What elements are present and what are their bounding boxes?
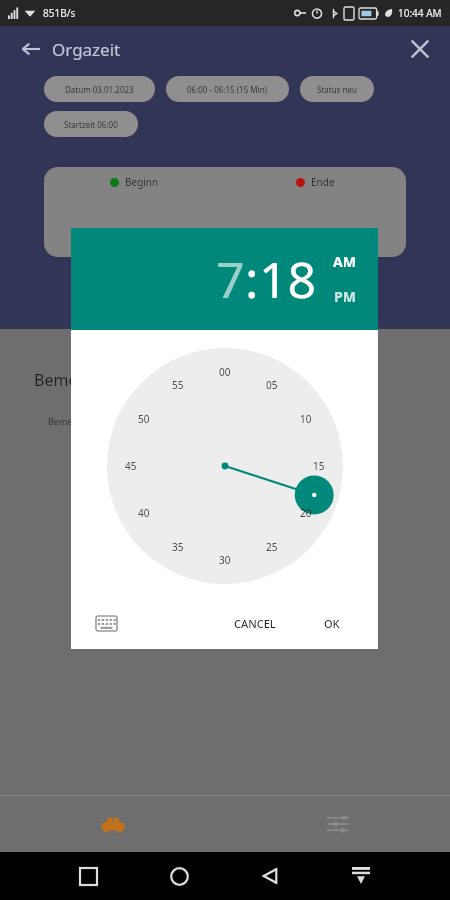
staticText: 10:44 AM [398, 6, 442, 20]
staticText: OK [324, 616, 340, 631]
staticText: 20 [300, 506, 312, 520]
staticText: Orgazeit [52, 38, 121, 61]
button[interactable]: Datum 03.01.2023 [44, 76, 155, 102]
staticText: 15 [313, 459, 325, 473]
staticText: CANCEL [234, 616, 276, 631]
button[interactable]: Close [400, 29, 440, 69]
button[interactable]: Einstellungen [225, 795, 450, 852]
button[interactable]: Beginn [44, 167, 406, 257]
button[interactable]: Status neu [300, 76, 374, 102]
button[interactable]: PM [332, 286, 358, 307]
button[interactable]: CANCEL [222, 608, 288, 639]
staticText: Ende [311, 175, 335, 189]
staticText: AM [333, 252, 356, 271]
staticText: Status neu [317, 84, 357, 95]
staticText: 05 [266, 378, 278, 392]
staticText: 00 [219, 365, 231, 379]
button[interactable]: Startzeit 06:00 [44, 111, 138, 137]
staticText: 25 [266, 540, 278, 554]
button[interactable]: 7 [216, 245, 245, 313]
staticText: Beginn [125, 175, 159, 189]
staticText: : [245, 245, 259, 313]
staticText: 30 [219, 553, 231, 567]
staticText: 55 [172, 378, 184, 392]
staticText: 40 [138, 506, 150, 520]
button[interactable]: OK [312, 608, 352, 639]
staticText: 06:00 - 06:15 (15 Min) [187, 84, 268, 95]
staticText: 851B/s [43, 6, 76, 20]
staticText: Bemerkung [48, 415, 98, 427]
button[interactable]: 18 [259, 245, 317, 313]
staticText: 50 [138, 412, 150, 426]
button[interactable]: 06:00 - 06:15 (15 Min) [166, 76, 289, 102]
button[interactable]: Switch to text input [89, 606, 123, 640]
staticText: PM [334, 287, 356, 306]
staticText: 10 [300, 412, 312, 426]
staticText: 35 [172, 540, 184, 554]
staticText: Bemerkung [34, 369, 123, 391]
staticText: Datum 03.01.2023 [65, 84, 134, 95]
staticText: Startzeit 06:00 [64, 119, 118, 130]
button[interactable]: Back [16, 34, 46, 64]
button[interactable]: AM [331, 251, 358, 272]
staticText: 18 [259, 245, 317, 313]
staticText: 45 [125, 459, 137, 473]
button[interactable]: Fahrten [0, 795, 225, 852]
staticText: 7 [216, 245, 245, 313]
